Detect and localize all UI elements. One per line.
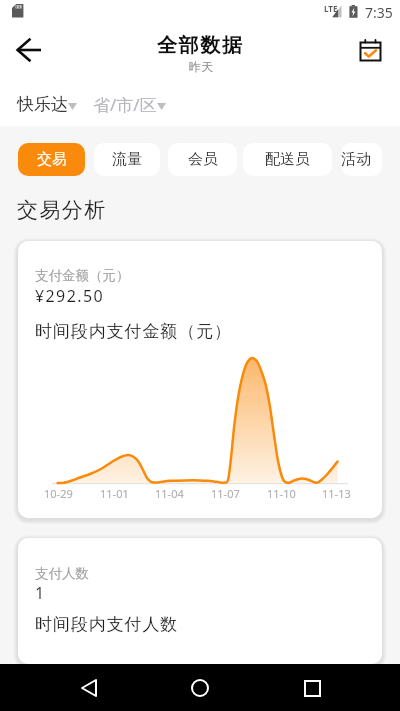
staticText: 流量 xyxy=(112,150,142,169)
staticText: 11-04 xyxy=(155,486,184,501)
staticText: 全部数据 xyxy=(157,33,244,58)
staticText: 11-13 xyxy=(322,486,351,501)
staticText: 7:35 xyxy=(365,3,393,22)
staticText: 配送员 xyxy=(265,150,310,169)
button[interactable]: Recents xyxy=(289,665,335,711)
staticText: 省/市/区 xyxy=(93,93,157,116)
staticText: 快乐达 xyxy=(17,94,68,115)
staticText: 11-10 xyxy=(267,486,296,501)
staticText: 1 xyxy=(35,582,46,604)
staticText: 交易分析 xyxy=(17,197,107,223)
staticText: 昨天 xyxy=(188,59,214,74)
button[interactable]: Calendar xyxy=(348,28,392,72)
button[interactable]: Back xyxy=(5,26,53,74)
staticText: 活动数 xyxy=(341,150,382,169)
staticText: 11-07 xyxy=(211,486,240,501)
staticText: 时间段内支付人数 xyxy=(35,614,179,635)
button[interactable]: Home xyxy=(177,665,223,711)
staticText: ¥292.50 xyxy=(35,285,105,307)
button[interactable]: 配送员 xyxy=(243,143,332,176)
staticText: 时间段内支付金额（元） xyxy=(35,321,232,342)
button[interactable]: 流量 xyxy=(94,143,160,176)
button[interactable]: 省/市/区 xyxy=(93,93,166,116)
staticText: 11-01 xyxy=(100,486,129,501)
staticText: 10-29 xyxy=(44,486,73,501)
button[interactable]: 活动数 xyxy=(341,143,382,176)
staticText: LTE xyxy=(324,3,338,14)
staticText: 支付金额（元） xyxy=(35,267,130,284)
staticText: 会员 xyxy=(188,150,218,169)
button[interactable]: 交易 xyxy=(18,143,85,176)
button[interactable]: Back xyxy=(66,665,112,711)
button[interactable]: 会员 xyxy=(168,143,237,176)
staticText: 交易 xyxy=(37,150,67,169)
button[interactable]: 快乐达 xyxy=(17,94,77,115)
staticText: 支付人数 xyxy=(35,565,89,582)
